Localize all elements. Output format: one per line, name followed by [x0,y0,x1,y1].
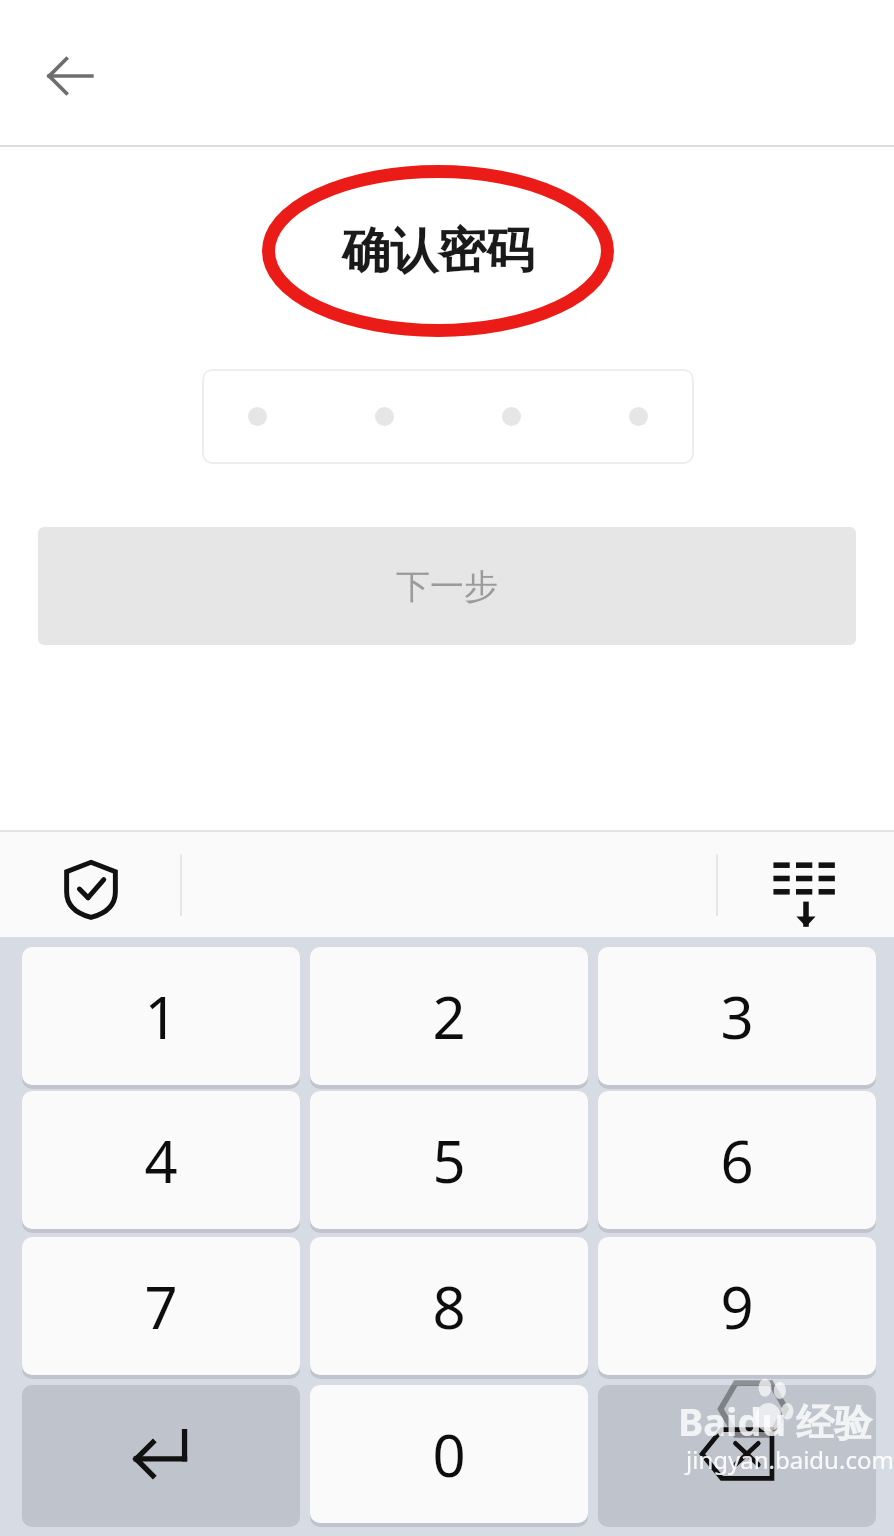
button[interactable]: 7 [22,1237,300,1375]
button[interactable]: 6 [598,1091,876,1229]
button[interactable]: 8 [310,1237,588,1375]
button[interactable]: 5 [310,1091,588,1229]
staticText: 0 [432,1415,466,1494]
button[interactable]: 2 [310,947,588,1085]
staticText: 1 [144,977,178,1056]
button[interactable] [202,369,694,464]
staticText: 3 [720,977,754,1056]
button[interactable]: 4 [22,1091,300,1229]
staticText: 7 [144,1267,178,1346]
button[interactable]: 下一步 [38,527,856,645]
staticText: jingyan.baidu.com [686,1443,894,1476]
button[interactable]: Back [30,36,110,116]
button[interactable]: Backspace [598,1385,876,1523]
button[interactable]: 9 [598,1237,876,1375]
staticText: 4 [144,1121,178,1200]
button[interactable]: Hide keyboard [762,848,850,936]
button[interactable]: 1 [22,947,300,1085]
staticText: 下一步 [396,565,498,608]
staticText: 6 [720,1121,754,1200]
button[interactable]: 3 [598,947,876,1085]
staticText: 9 [720,1267,754,1346]
staticText: Baidu 经验 [678,1395,872,1447]
button[interactable]: 0 [310,1385,588,1523]
staticText: 2 [432,977,466,1056]
button[interactable]: Enter [22,1385,300,1523]
button[interactable]: Secure input [52,850,130,928]
staticText: 8 [432,1267,466,1346]
staticText: 确认密码 [342,221,534,281]
staticText: 5 [432,1121,466,1200]
